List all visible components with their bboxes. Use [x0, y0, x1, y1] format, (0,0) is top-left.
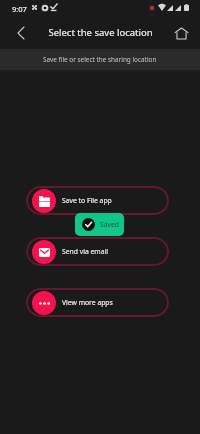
button[interactable]: View more apps: [26, 288, 169, 317]
staticText: Send via email: [62, 247, 109, 256]
button[interactable]: Back: [9, 21, 33, 45]
button[interactable]: Save to File app: [26, 186, 169, 215]
staticText: Save file or select the sharing location: [43, 55, 157, 64]
staticText: Saved: [100, 220, 120, 229]
staticText: Select the save location: [48, 26, 153, 39]
staticText: View more apps: [62, 298, 113, 307]
button[interactable]: Send via email: [26, 237, 169, 266]
button[interactable]: Home: [169, 21, 193, 45]
button[interactable]: Saved: [75, 213, 124, 236]
staticText: 9:07: [12, 4, 27, 14]
staticText: Save to File app: [62, 196, 112, 205]
